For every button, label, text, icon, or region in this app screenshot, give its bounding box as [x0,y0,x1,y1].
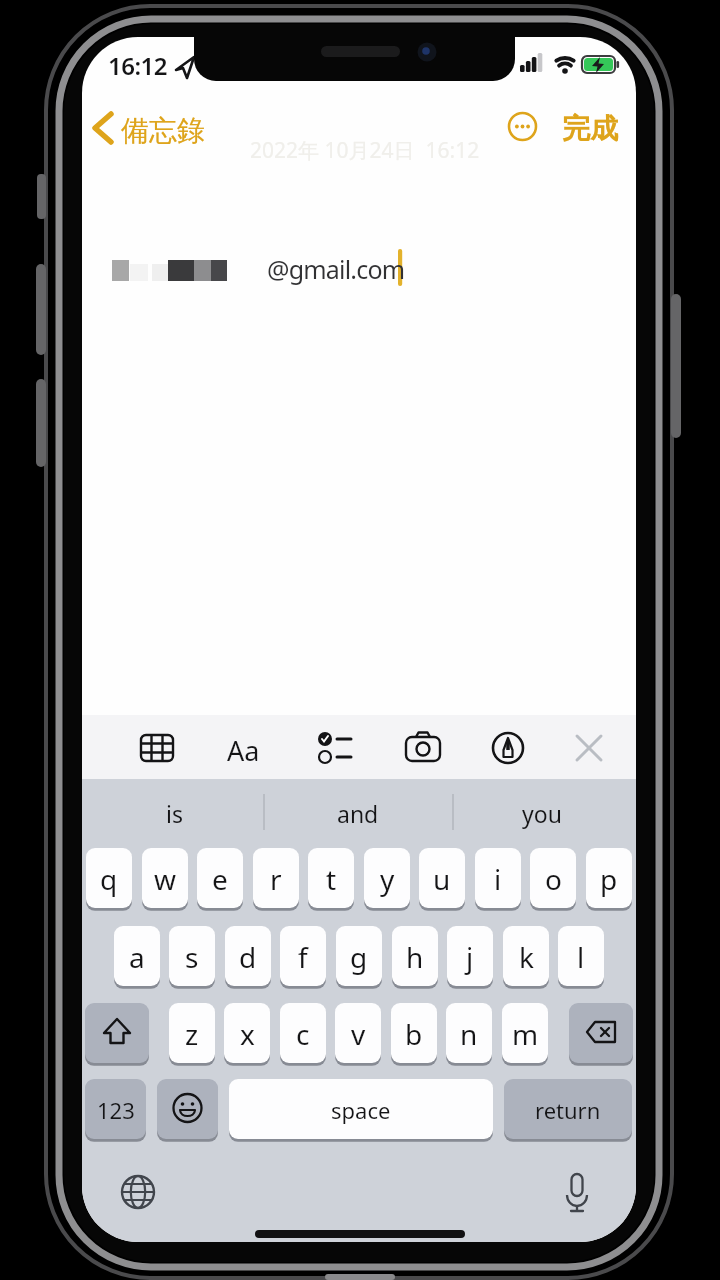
staticText: is [166,798,183,829]
button[interactable]: a [114,926,160,987]
button[interactable] [157,1079,218,1140]
staticText: @gmail.com [267,252,405,286]
staticText: c [296,1015,310,1053]
staticText: q [100,860,118,898]
button[interactable]: d [225,926,271,987]
button[interactable]: h [392,926,438,987]
staticText: t [326,860,337,898]
staticText: and [337,798,379,829]
button[interactable]: space [229,1079,493,1140]
button[interactable]: l [558,926,604,987]
staticText: return [535,1095,601,1125]
staticText: v [351,1015,366,1053]
staticText: 123 [97,1095,135,1125]
button[interactable]: u [419,848,465,909]
staticText: you [522,798,562,829]
button[interactable]: v [335,1003,381,1064]
button[interactable]: you [450,782,634,845]
button[interactable]: q [86,848,132,909]
staticText: y [380,860,395,898]
button[interactable]: b [391,1003,437,1064]
button[interactable]: x [224,1003,270,1064]
button[interactable]: t [308,848,354,909]
staticText: n [460,1015,478,1053]
staticText: z [185,1015,199,1053]
staticText: g [350,938,368,976]
staticText: i [494,860,502,898]
button[interactable] [85,1003,149,1064]
button[interactable] [114,1168,162,1216]
staticText: a [129,938,145,976]
button[interactable] [569,1003,633,1064]
staticText: j [466,938,474,976]
staticText: 完成 [562,111,618,146]
staticText: x [240,1015,255,1053]
staticText: w [154,860,177,898]
button[interactable]: r [253,848,299,909]
staticText: 2022年 10月24日 16:12 [250,136,480,165]
button[interactable]: 完成 [560,111,622,147]
button[interactable]: i [475,848,521,909]
button[interactable]: is [82,782,266,845]
button[interactable]: n [446,1003,492,1064]
button[interactable]: m [502,1003,548,1064]
staticText: l [577,938,585,976]
staticText: f [298,938,308,976]
button[interactable]: return [504,1079,632,1140]
staticText: u [433,860,451,898]
button[interactable]: g [336,926,382,987]
staticText: s [185,938,199,976]
staticText: r [270,860,282,898]
staticText: p [600,860,618,898]
button[interactable]: w [142,848,188,909]
button[interactable]: j [447,926,493,987]
button[interactable]: 123 [85,1079,146,1140]
button[interactable]: k [503,926,549,987]
staticText: e [212,860,228,898]
staticText: m [512,1015,539,1053]
button[interactable]: y [364,848,410,909]
button[interactable]: z [169,1003,215,1064]
button[interactable]: p [586,848,632,909]
button[interactable]: and [266,782,450,845]
staticText: o [545,860,562,898]
staticText: space [331,1095,391,1125]
button[interactable]: e [197,848,243,909]
button[interactable]: 備忘錄 [88,107,218,153]
staticText: 16:12 [108,49,168,82]
button[interactable]: o [530,848,576,909]
staticText: Aa [227,732,260,769]
staticText: h [406,938,424,976]
staticText: d [239,938,257,976]
button[interactable]: s [169,926,215,987]
button[interactable] [507,111,538,142]
staticText: 備忘錄 [121,113,205,148]
staticText: b [405,1015,423,1053]
button[interactable]: f [280,926,326,987]
button[interactable] [553,1168,601,1216]
staticText: k [519,938,534,976]
button[interactable]: c [280,1003,326,1064]
